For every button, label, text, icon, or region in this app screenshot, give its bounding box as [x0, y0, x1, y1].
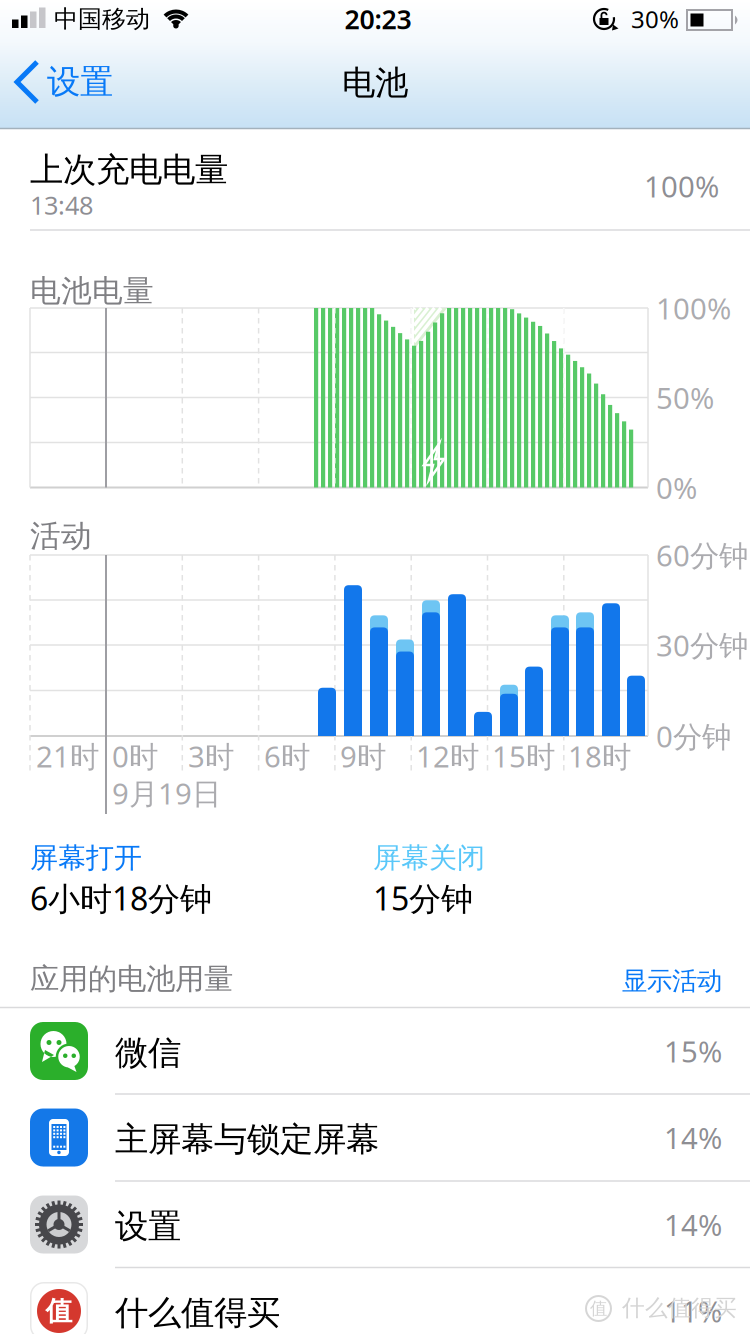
- staticText: 12时: [416, 736, 479, 775]
- staticText: 3时: [188, 736, 234, 775]
- staticText: 9月19日: [112, 773, 221, 812]
- staticText: 0分钟: [656, 716, 731, 755]
- staticText: 100%: [656, 288, 731, 327]
- button[interactable]: 值: [0, 1267, 750, 1334]
- staticText: 14%: [664, 1205, 722, 1244]
- staticText: 0时: [112, 736, 158, 775]
- staticText: 21时: [36, 736, 99, 775]
- staticText: 什么值得买: [622, 1294, 737, 1322]
- staticText: 20:23: [344, 1, 411, 37]
- staticText: 15时: [492, 736, 555, 775]
- staticText: 14%: [664, 1118, 722, 1157]
- staticText: 微信: [115, 1032, 181, 1073]
- staticText: 11%: [664, 1291, 722, 1330]
- staticText: 6时: [264, 736, 310, 775]
- staticText: 30分钟: [656, 625, 748, 664]
- staticText: 上次充电电量: [30, 149, 228, 190]
- staticText: 60分钟: [656, 535, 748, 574]
- button[interactable]: 微信: [0, 1007, 750, 1094]
- staticText: 设置: [47, 61, 113, 102]
- staticText: 30%: [631, 3, 679, 35]
- staticText: 15分钟: [373, 877, 473, 919]
- staticText: 13:48: [30, 188, 93, 222]
- staticText: 活动: [30, 517, 92, 555]
- button[interactable]: 设置: [17, 56, 113, 108]
- staticText: 15%: [664, 1031, 722, 1070]
- staticText: 屏幕关闭: [373, 841, 485, 875]
- staticText: 电池: [342, 62, 408, 103]
- staticText: 应用的电池用量: [30, 961, 233, 997]
- staticText: 设置: [115, 1206, 181, 1247]
- staticText: 什么值得买: [115, 1292, 280, 1333]
- button[interactable]: 主屏幕与锁定屏幕: [0, 1094, 750, 1181]
- staticText: 50%: [656, 378, 714, 417]
- staticText: 100%: [644, 166, 719, 205]
- staticText: 显示活动: [622, 965, 722, 996]
- staticText: 中国移动: [54, 4, 150, 34]
- button[interactable]: 显示活动: [562, 963, 722, 999]
- staticText: 屏幕打开: [30, 841, 142, 875]
- staticText: 9时: [340, 736, 386, 775]
- staticText: 0%: [656, 468, 697, 507]
- staticText: 18时: [568, 736, 631, 775]
- staticText: 6小时18分钟: [30, 877, 212, 919]
- staticText: 电池电量: [30, 272, 154, 310]
- button[interactable]: 设置: [0, 1181, 750, 1268]
- staticText: 值: [45, 1295, 72, 1327]
- staticText: 主屏幕与锁定屏幕: [115, 1119, 379, 1160]
- staticText: 值: [590, 1298, 607, 1319]
